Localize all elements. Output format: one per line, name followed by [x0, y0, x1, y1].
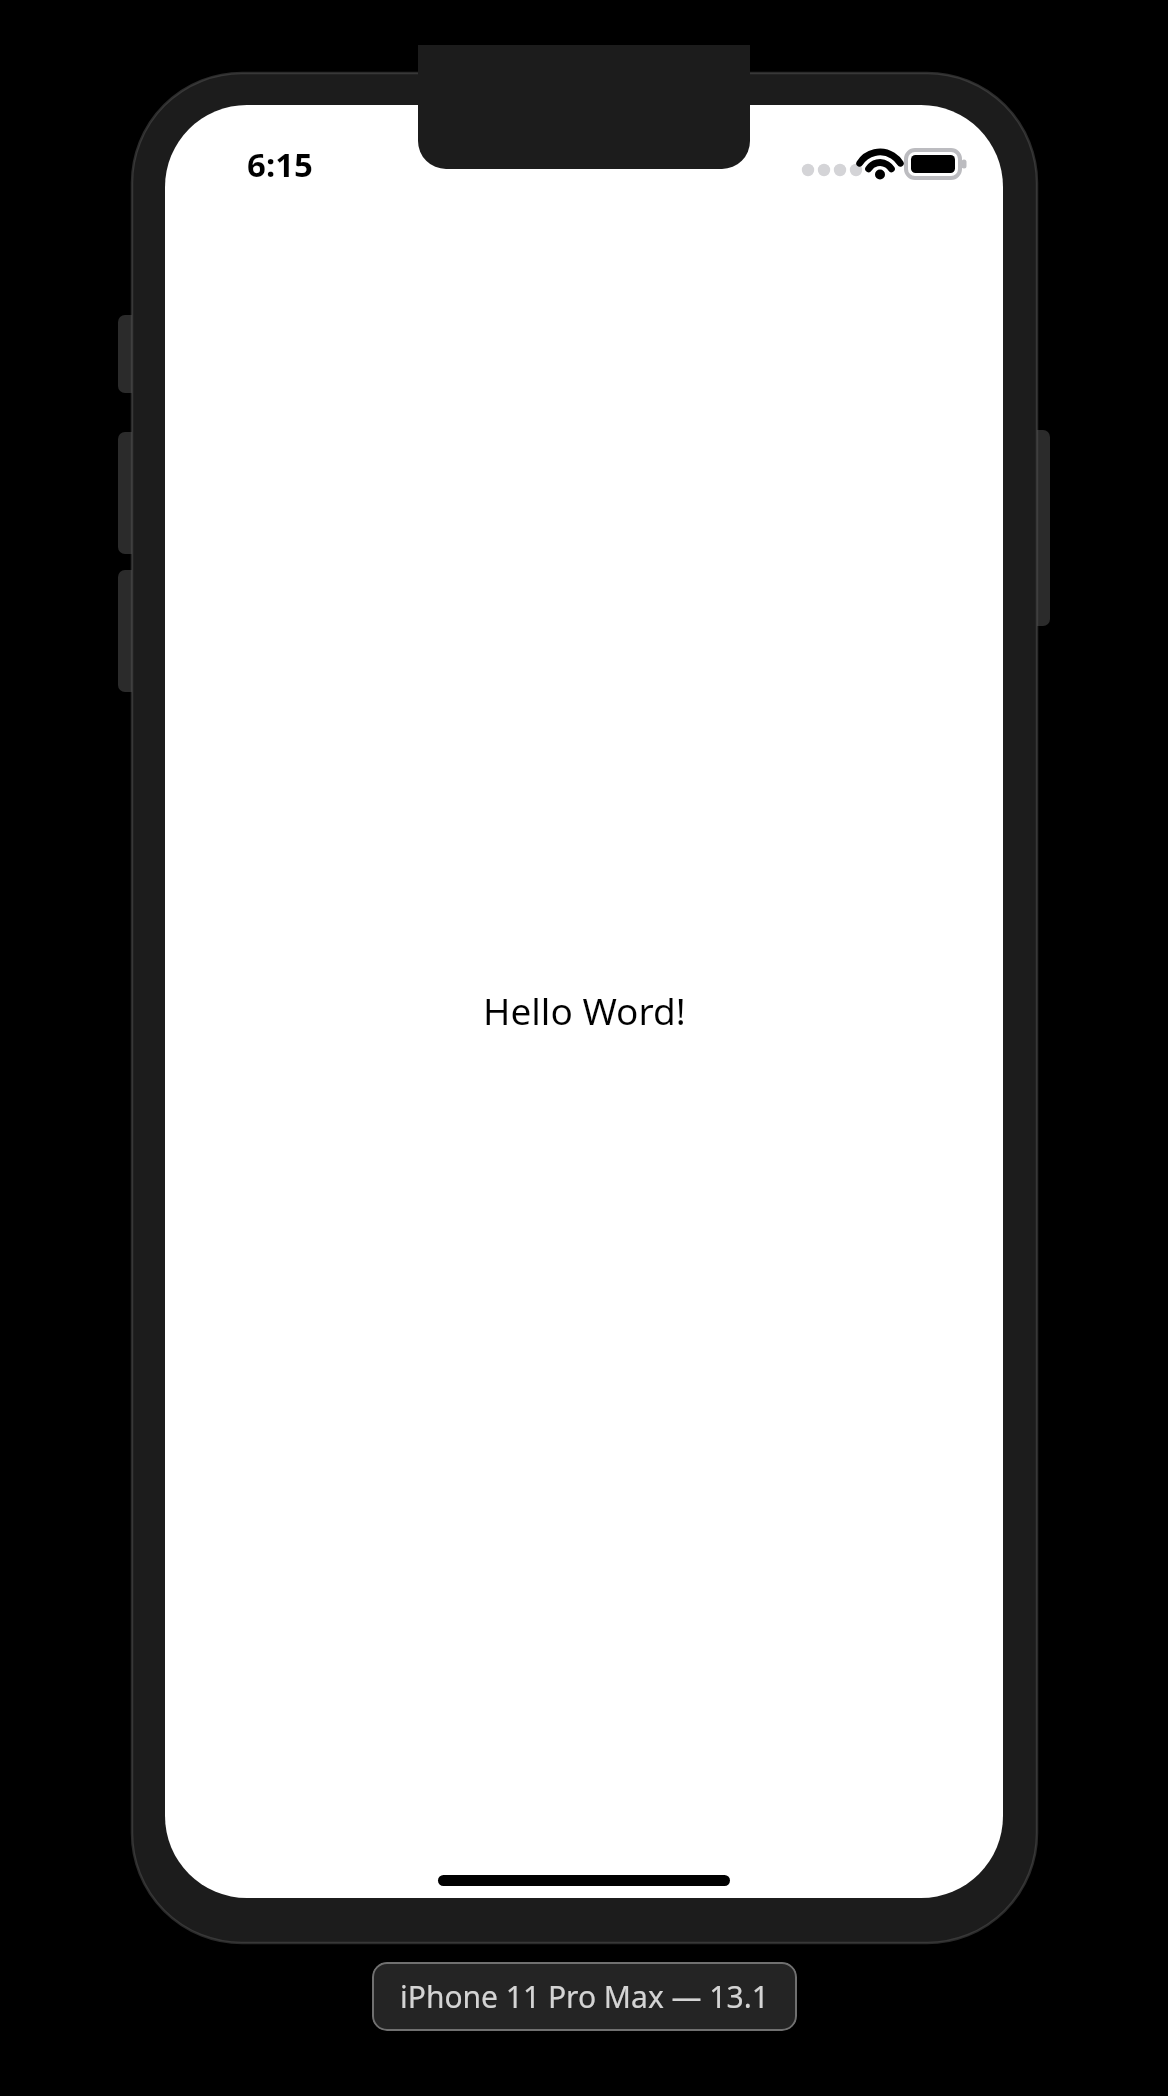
- button[interactable]: iPhone 11 Pro Max — 13.1: [372, 1962, 797, 2031]
- button[interactable]: 6:15: [247, 142, 313, 187]
- staticText: iPhone 11 Pro Max — 13.1: [400, 1976, 769, 2017]
- staticText: Hello Word!: [483, 985, 686, 1035]
